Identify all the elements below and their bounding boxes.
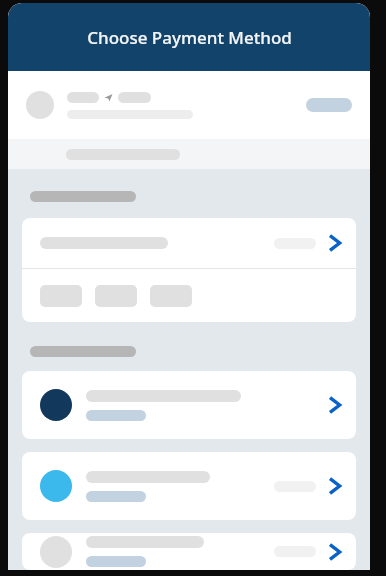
other: Open	[324, 230, 344, 256]
button[interactable]: Open	[22, 218, 356, 268]
other: Open payment method	[324, 473, 344, 499]
staticText: Choose Payment Method	[87, 26, 292, 49]
other: Open payment method	[324, 392, 344, 418]
button[interactable]: Open payment method	[22, 452, 356, 520]
button[interactable]	[95, 285, 137, 307]
button[interactable]	[150, 285, 192, 307]
button[interactable]: Open payment method	[22, 533, 356, 570]
button[interactable]	[40, 285, 82, 307]
button[interactable]	[8, 71, 370, 139]
other: Open payment method	[324, 539, 344, 565]
button[interactable]: Open payment method	[22, 371, 356, 439]
